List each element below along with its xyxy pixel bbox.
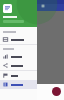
button[interactable]: Menu xyxy=(41,4,45,8)
button[interactable]: Drawer item xyxy=(0,61,37,70)
button[interactable]: Add xyxy=(52,87,61,96)
button[interactable]: Drawer item xyxy=(0,71,37,80)
button[interactable]: Drawer item xyxy=(0,80,37,89)
button[interactable]: Drawer item xyxy=(0,35,37,44)
button[interactable]: Drawer item xyxy=(0,52,37,61)
